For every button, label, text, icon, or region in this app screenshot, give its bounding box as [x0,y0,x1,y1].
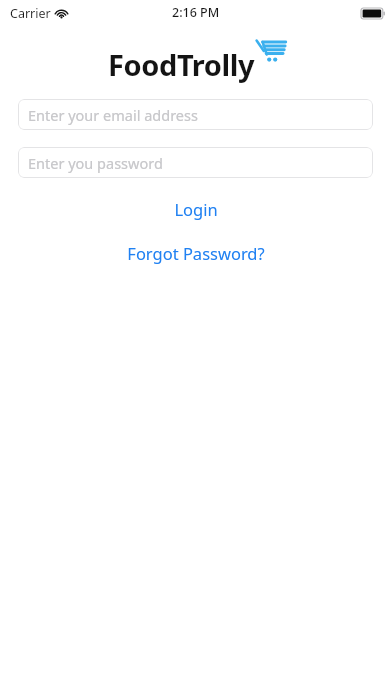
button[interactable]: Forgot Password? [0,239,392,267]
button[interactable]: Login [0,195,392,223]
staticText: 2:16 PM [172,4,220,21]
staticText: Forgot Password? [127,242,265,264]
button[interactable]: Enter your email address [18,99,373,130]
staticText: Carrier [10,5,51,22]
staticText: Enter your email address [28,105,198,125]
staticText: FoodTrolly [108,45,255,84]
staticText: Login [174,198,218,220]
staticText: Enter you password [28,153,163,173]
button[interactable]: Enter you password [18,147,373,178]
